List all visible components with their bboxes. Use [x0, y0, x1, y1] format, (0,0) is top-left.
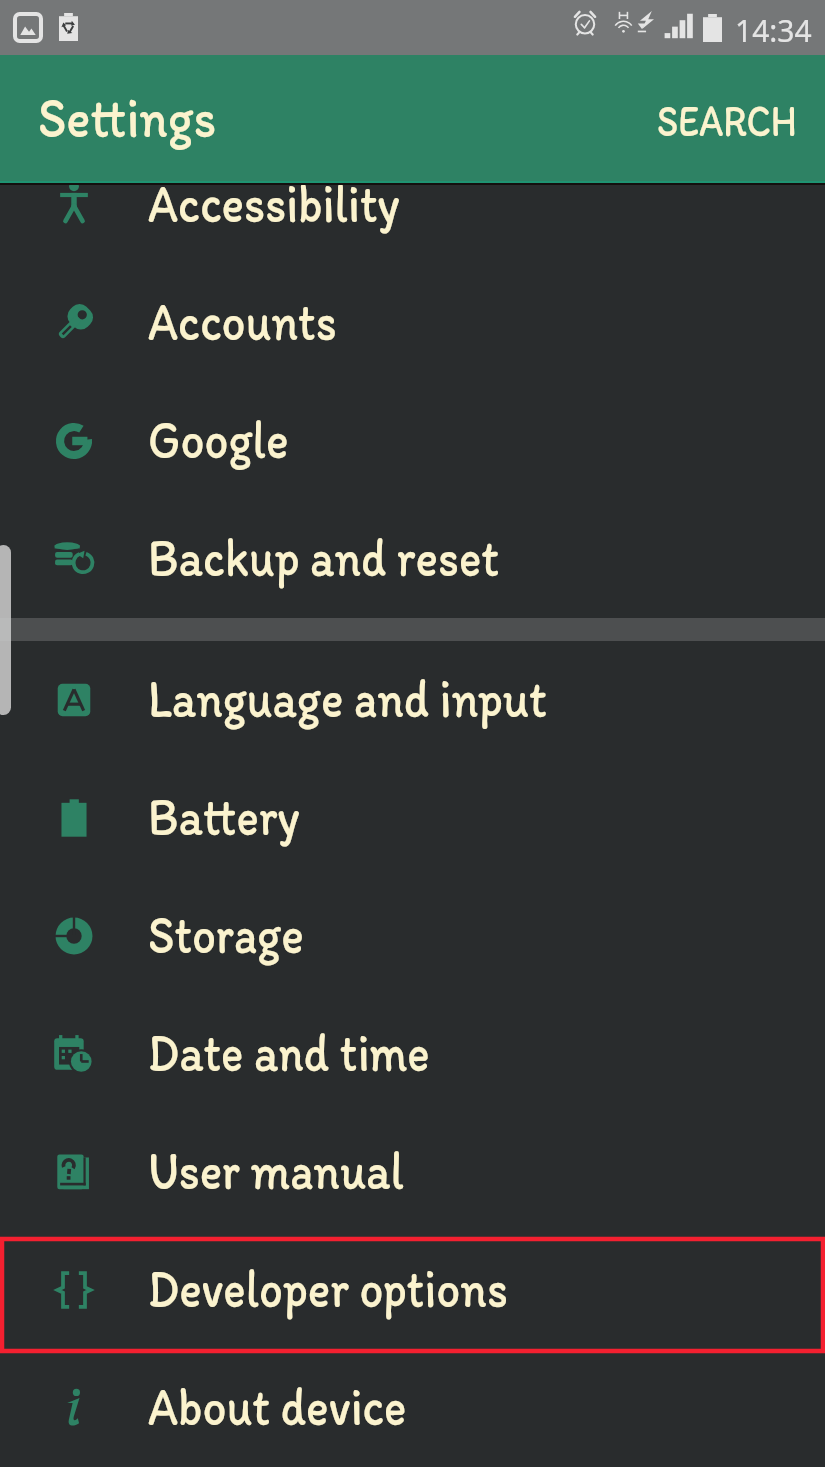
button[interactable]: Accessibility	[0, 146, 825, 264]
button[interactable]: About device	[0, 1349, 825, 1467]
button[interactable]: Backup and reset	[0, 500, 825, 618]
button[interactable]: Google	[0, 382, 825, 500]
button[interactable]: User manual	[0, 1113, 825, 1231]
button[interactable]: Developer options	[0, 1231, 825, 1349]
staticText: Accessibility	[148, 169, 400, 236]
button[interactable]: Storage	[0, 877, 825, 995]
staticText: Date and time	[148, 1018, 430, 1085]
staticText: Settings	[38, 82, 216, 152]
staticText: User manual	[148, 1136, 404, 1203]
button[interactable]: Date and time	[0, 995, 825, 1113]
staticText: Developer options	[148, 1254, 508, 1321]
staticText: Storage	[148, 900, 304, 967]
staticText: About device	[148, 1372, 407, 1439]
staticText: SEARCH	[657, 92, 797, 147]
staticText: 14:34	[735, 10, 812, 51]
button[interactable]: Battery	[0, 759, 825, 877]
staticText: Battery	[148, 782, 300, 849]
button[interactable]: SEARCH	[625, 68, 825, 171]
staticText: Language and input	[148, 664, 547, 731]
staticText: Google	[148, 405, 289, 472]
button[interactable]: Accounts	[0, 264, 825, 382]
staticText: Backup and reset	[148, 523, 499, 590]
button[interactable]: Language and input	[0, 641, 825, 759]
staticText: Accounts	[148, 287, 337, 354]
